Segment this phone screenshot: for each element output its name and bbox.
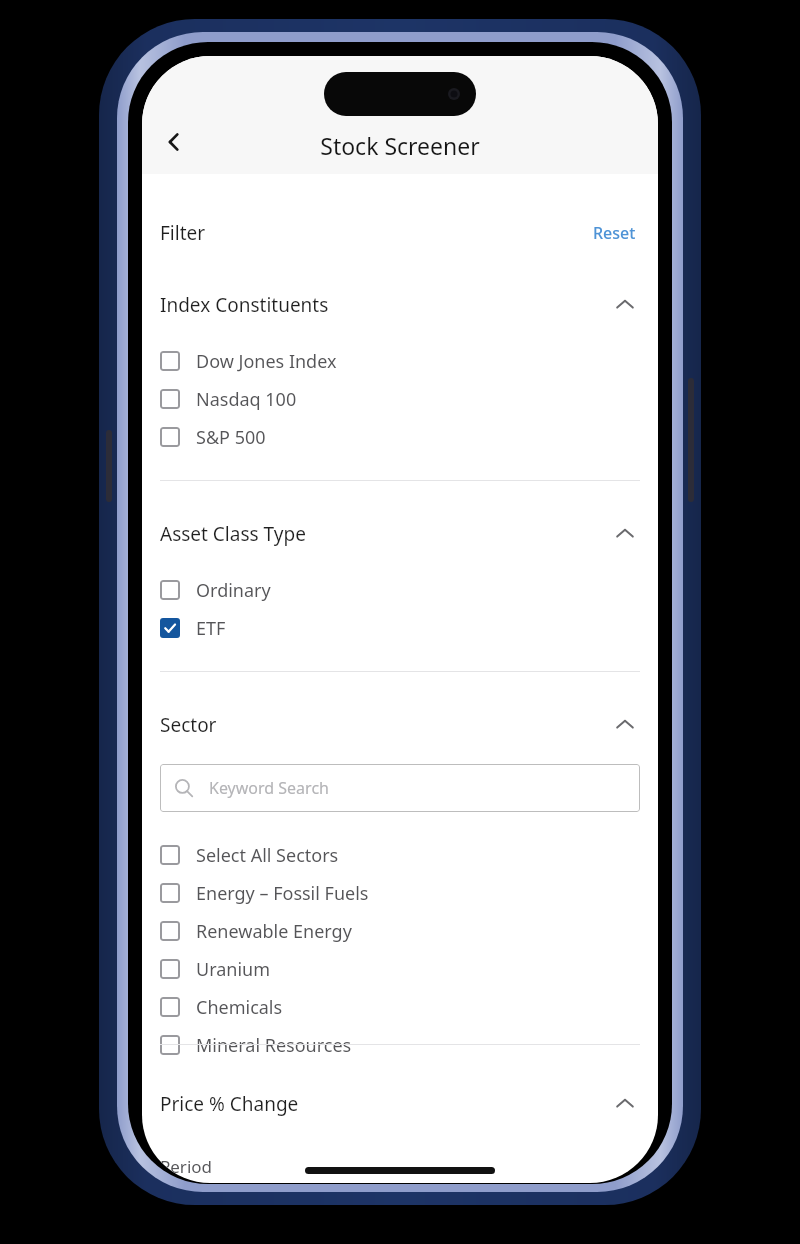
staticText: Mineral Resources	[196, 1033, 352, 1058]
staticText: S&P 500	[196, 425, 266, 450]
staticText: Chemicals	[196, 995, 283, 1020]
staticText: Select All Sectors	[196, 843, 339, 868]
button[interactable]: ETF	[142, 609, 658, 647]
other: Collapse Index Constituents	[610, 290, 640, 320]
staticText: Dow Jones Index	[196, 349, 337, 374]
button[interactable]: Back	[150, 118, 198, 166]
other: Collapse Price % Change	[610, 1089, 640, 1119]
staticText: Nasdaq 100	[196, 387, 297, 412]
staticText: Energy – Fossil Fuels	[196, 881, 369, 906]
staticText: Period	[160, 1155, 213, 1178]
button[interactable]: S&P 500	[142, 418, 658, 456]
button[interactable]: Index Constituents	[142, 290, 658, 320]
button[interactable]: Sector	[142, 710, 658, 740]
staticText: Renewable Energy	[196, 919, 352, 944]
staticText: Filter	[160, 220, 206, 246]
button[interactable]: Chemicals	[142, 988, 658, 1026]
staticText: ETF	[196, 616, 226, 641]
button[interactable]: Renewable Energy	[142, 912, 658, 950]
staticText: Keyword Search	[209, 777, 329, 799]
button[interactable]: Asset Class Type	[142, 519, 658, 549]
button[interactable]: Uranium	[142, 950, 658, 988]
staticText: Stock Screener	[142, 130, 658, 161]
button[interactable]: Nasdaq 100	[142, 380, 658, 418]
button[interactable]: Dow Jones Index	[142, 342, 658, 380]
button[interactable]: Keyword Search	[160, 764, 640, 812]
button[interactable]: Mineral Resources	[142, 1026, 658, 1064]
staticText: Index Constituents	[160, 292, 329, 318]
staticText: Sector	[160, 712, 217, 738]
staticText: Reset	[593, 222, 636, 244]
button[interactable]: Ordinary	[142, 571, 658, 609]
button[interactable]: Reset	[589, 218, 640, 248]
button[interactable]: Price % Change	[142, 1089, 658, 1119]
staticText: Asset Class Type	[160, 521, 306, 547]
staticText: Ordinary	[196, 578, 271, 603]
staticText: Uranium	[196, 957, 271, 982]
other: Collapse Asset Class Type	[610, 519, 640, 549]
staticText: Price % Change	[160, 1091, 299, 1117]
button[interactable]: Select All Sectors	[142, 836, 658, 874]
button[interactable]: Energy – Fossil Fuels	[142, 874, 658, 912]
other: Collapse Sector	[610, 710, 640, 740]
